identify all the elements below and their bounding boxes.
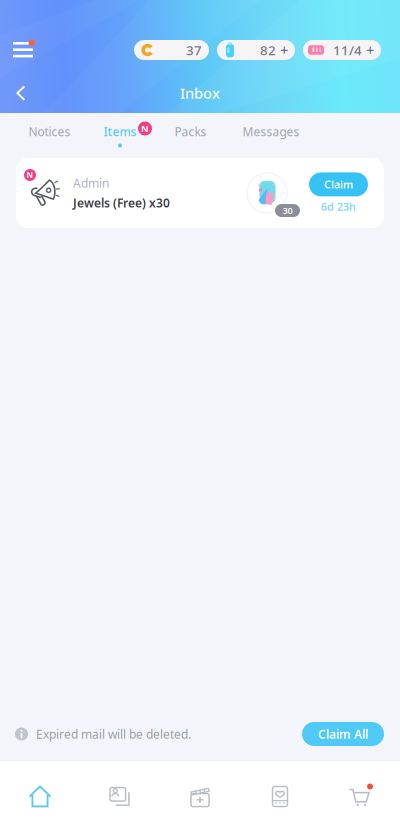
button[interactable]: Menu — [0, 35, 46, 65]
staticText: Admin — [73, 175, 109, 191]
staticText: 30 — [282, 204, 292, 217]
button[interactable]: Back — [0, 76, 42, 110]
staticText: Claim All — [318, 726, 368, 742]
staticText: + — [362, 40, 374, 60]
staticText: Expired mail will be deleted. — [36, 726, 191, 742]
button[interactable]: Claim All — [302, 722, 384, 746]
staticText: 37 — [186, 41, 202, 59]
staticText: Claim — [324, 177, 353, 191]
staticText: 11/4 — [333, 41, 362, 59]
staticText: N — [26, 170, 33, 180]
button[interactable]: Favourites — [240, 761, 320, 832]
staticText: Packs — [174, 123, 206, 139]
staticText: 82 — [260, 41, 276, 59]
button[interactable]: Shop — [320, 761, 400, 832]
button[interactable]: Packs — [155, 113, 226, 158]
button[interactable]: Notices — [14, 113, 85, 158]
button[interactable]: Messages — [226, 113, 316, 158]
button[interactable]: 37 — [134, 40, 209, 60]
button[interactable]: Collection — [80, 761, 160, 832]
button[interactable]: Create — [160, 761, 240, 832]
button[interactable]: 82 — [217, 40, 295, 60]
staticText: + — [276, 40, 288, 60]
button[interactable]: Admin — [16, 158, 384, 228]
button[interactable]: 11/4 — [303, 40, 381, 60]
staticText: Inbox — [180, 83, 220, 103]
staticText: Notices — [28, 123, 70, 139]
button[interactable]: Home — [0, 761, 80, 832]
staticText: N — [141, 122, 149, 135]
button[interactable]: Items — [85, 113, 155, 158]
staticText: Items — [103, 123, 136, 139]
staticText: Jewels (Free) x30 — [73, 195, 170, 211]
staticText: 6d 23h — [321, 199, 356, 214]
staticText: Messages — [242, 123, 299, 139]
